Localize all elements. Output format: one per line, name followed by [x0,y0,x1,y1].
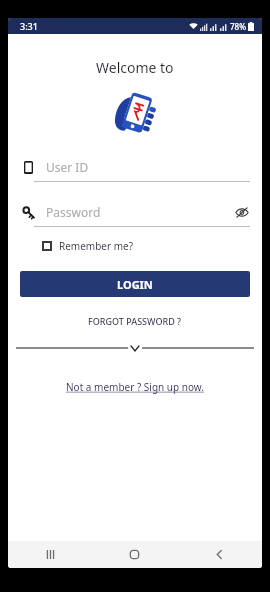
staticText: Password [46,204,234,220]
staticText: FORGOT PASSWORD ? [88,315,182,327]
button[interactable]: Remember me? [42,239,242,253]
staticText: Remember me? [59,239,134,253]
staticText: Welcome to [96,58,174,77]
button[interactable]: LOGIN [20,271,250,297]
button[interactable]: Not a member ? Sign up now. [63,377,207,397]
button[interactable]: Home [92,541,177,568]
staticText: User ID [46,159,250,175]
button[interactable]: Password [20,202,250,227]
staticText: 3:31 [20,20,38,32]
button[interactable]: Show password [234,204,250,220]
staticText: LOGIN [117,277,153,292]
button[interactable]: FORGOT PASSWORD ? [84,311,186,331]
button[interactable]: Back [177,541,262,568]
button[interactable]: Recent apps [8,541,92,568]
button[interactable]: User ID [20,157,250,182]
staticText: 78% [230,21,246,32]
staticText: Not a member ? Sign up now. [66,380,204,394]
